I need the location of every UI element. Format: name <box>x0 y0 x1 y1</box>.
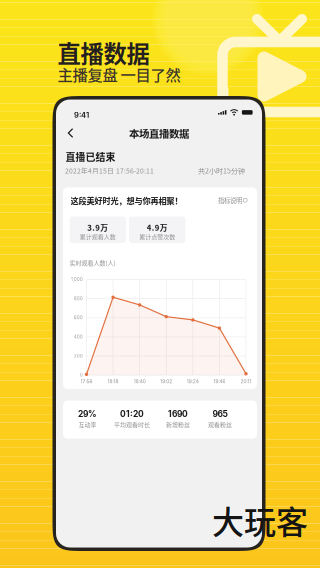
staticText: 600 <box>74 315 83 320</box>
staticText: 观看粉丝 <box>208 420 232 429</box>
staticText: 直播数据 <box>57 36 149 69</box>
staticText: 共2小时15分钟 <box>198 165 245 176</box>
staticText: 01:20 <box>120 409 144 419</box>
staticText: 主播复盘 一目了然 <box>57 63 180 85</box>
staticText: 新增粉丝 <box>166 420 190 429</box>
staticText: 平均观看时长 <box>114 420 150 429</box>
staticText: 互动率 <box>78 420 96 429</box>
staticText: 200 <box>74 353 83 358</box>
staticText: 0 <box>80 373 83 378</box>
staticText: 18:18 <box>108 379 119 384</box>
staticText: 29% <box>78 409 97 419</box>
staticText: 965 <box>212 409 227 419</box>
staticText: 19:46 <box>213 379 225 384</box>
staticText: 这段美好时光，想与你再相聚！ <box>71 195 183 206</box>
staticText: 直播已结束 <box>65 149 115 164</box>
staticText: 累计点赞次数 <box>139 232 175 241</box>
staticText: 17:56 <box>80 379 92 384</box>
staticText: 实时观看人数(人) <box>70 258 116 267</box>
staticText: 1,000 <box>71 277 83 282</box>
staticText: 累计观看人数 <box>80 232 116 241</box>
staticText: 1690 <box>168 409 188 419</box>
button[interactable]: 指标说明 <box>205 195 247 205</box>
staticText: 18:40 <box>134 379 146 384</box>
staticText: 指标说明 <box>218 196 242 205</box>
staticText: 4.9万 <box>147 222 168 233</box>
staticText: 大玩客 <box>212 497 308 543</box>
staticText: 400 <box>74 334 83 339</box>
staticText: 9:41 <box>74 110 89 120</box>
staticText: 2022年4月15日 17:56-20:11 <box>65 166 154 175</box>
staticText: 20:11 <box>240 379 251 384</box>
staticText: 本场直播数据 <box>129 125 189 141</box>
button[interactable]: Back <box>61 121 80 145</box>
staticText: 3.9万 <box>87 222 108 233</box>
staticText: 19:24 <box>187 379 199 384</box>
staticText: 800 <box>74 296 83 301</box>
staticText: 19:02 <box>160 379 172 384</box>
